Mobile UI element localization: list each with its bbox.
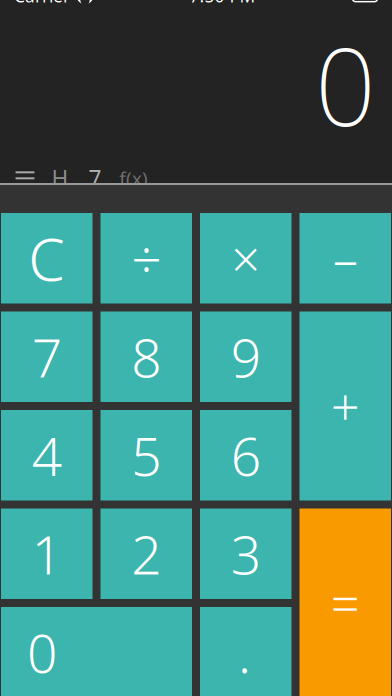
staticText: – — [333, 225, 358, 292]
button[interactable]: + — [299, 311, 391, 500]
button[interactable]: 5 — [100, 410, 192, 500]
button[interactable]: 2 — [100, 508, 192, 599]
button[interactable]: . — [200, 607, 291, 696]
staticText: 3 — [231, 518, 261, 589]
staticText: 0 — [315, 14, 376, 155]
staticText: 7:50 PM — [189, 0, 255, 7]
staticText: + — [331, 372, 360, 440]
button[interactable]: ÷ — [100, 213, 192, 303]
staticText: 8 — [131, 321, 161, 392]
button[interactable]: 1 — [1, 508, 92, 599]
staticText: ƒ(x) — [118, 166, 148, 191]
button[interactable]: C — [1, 213, 92, 303]
button[interactable]: Menu — [8, 163, 42, 193]
staticText: 5 — [131, 420, 161, 491]
staticText: . — [238, 617, 251, 688]
button[interactable]: 8 — [100, 311, 192, 402]
button[interactable]: H — [42, 163, 78, 193]
staticText: 7 — [32, 321, 62, 392]
staticText: 9 — [231, 321, 261, 392]
button[interactable]: 4 — [1, 410, 92, 500]
staticText: Carrier — [14, 0, 70, 7]
staticText: 6 — [231, 420, 261, 491]
button[interactable]: 3 — [200, 508, 291, 599]
button[interactable]: – — [299, 213, 391, 303]
staticText: 0 — [27, 617, 57, 688]
button[interactable]: 7 — [1, 311, 92, 402]
staticText: 2 — [131, 518, 161, 589]
staticText: 4 — [32, 420, 62, 491]
staticText: 7 — [88, 163, 101, 193]
staticText: = — [331, 569, 360, 637]
button[interactable]: 7 — [78, 163, 112, 193]
staticText: H — [51, 163, 68, 193]
button[interactable]: = — [299, 508, 391, 696]
button[interactable]: 0 — [1, 607, 192, 696]
button[interactable]: ƒ(x) — [112, 163, 154, 193]
button[interactable]: 9 — [200, 311, 291, 402]
staticText: ÷ — [131, 223, 161, 294]
staticText: × — [231, 225, 260, 292]
button[interactable]: × — [200, 213, 291, 303]
button[interactable]: 6 — [200, 410, 291, 500]
staticText: 1 — [32, 518, 62, 589]
staticText: C — [28, 219, 65, 297]
